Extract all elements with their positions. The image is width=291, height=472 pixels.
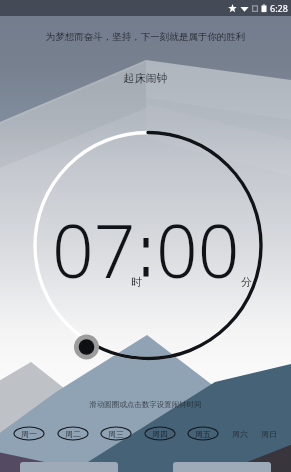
- staticText: 07: [52, 200, 136, 299]
- staticText: 周二: [65, 429, 81, 439]
- staticText: 周六: [232, 429, 248, 439]
- button[interactable]: 周日: [261, 429, 277, 439]
- button[interactable]: 周四: [145, 427, 175, 440]
- staticText: 周日: [261, 429, 277, 439]
- button[interactable]: Cancel: [20, 462, 118, 472]
- staticText: 周一: [21, 429, 37, 439]
- button[interactable]: Alarm time dial: [0, 0, 291, 472]
- staticText: 00: [156, 200, 240, 299]
- button[interactable]: Confirm: [173, 462, 271, 472]
- button[interactable]: 周五: [188, 427, 218, 440]
- button[interactable]: 周二: [58, 427, 88, 440]
- staticText: 起床闹钟: [0, 71, 291, 85]
- staticText: 周五: [195, 429, 211, 439]
- staticText: 6:28: [270, 2, 288, 14]
- button[interactable]: 周三: [101, 427, 131, 440]
- staticText: 为梦想而奋斗，坚持，下一刻就是属于你的胜利: [0, 31, 291, 43]
- button[interactable]: 周一: [14, 427, 44, 440]
- staticText: 分: [241, 275, 252, 289]
- button[interactable]: 周六: [232, 429, 248, 439]
- staticText: 周三: [108, 429, 124, 439]
- staticText: 滑动圆圈或点击数字设置闹钟时间: [0, 400, 291, 409]
- staticText: 周四: [152, 429, 168, 439]
- staticText: 时: [131, 275, 142, 289]
